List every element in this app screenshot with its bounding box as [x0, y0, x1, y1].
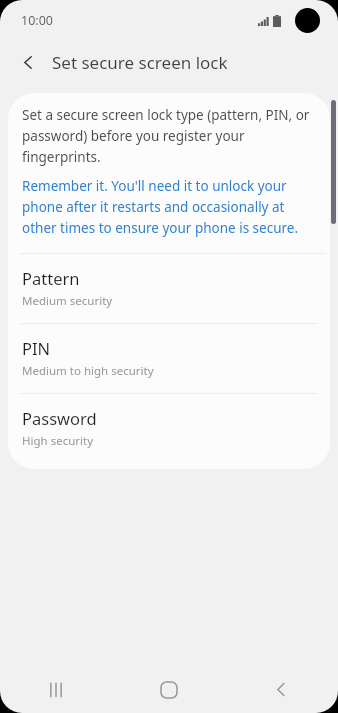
button[interactable]: PIN — [8, 324, 330, 393]
button[interactable]: Pattern — [8, 254, 330, 323]
staticText: Set a secure screen lock type (pattern, … — [22, 106, 310, 166]
staticText: Remember it. You'll need it to unlock yo… — [22, 177, 318, 237]
staticText: Medium to high security — [22, 363, 154, 379]
staticText: Pattern — [22, 267, 80, 289]
button[interactable]: Back — [225, 666, 338, 713]
staticText: 10:00 — [21, 12, 53, 29]
staticText: Set secure screen lock — [52, 51, 228, 74]
button[interactable]: Password — [8, 394, 330, 463]
staticText: Password — [22, 407, 97, 429]
staticText: Medium security — [22, 293, 113, 309]
button[interactable]: Home — [112, 666, 225, 713]
staticText: PIN — [22, 337, 51, 359]
staticText: High security — [22, 433, 94, 449]
button[interactable]: Back — [10, 44, 46, 80]
button[interactable]: Recent apps — [0, 666, 112, 713]
